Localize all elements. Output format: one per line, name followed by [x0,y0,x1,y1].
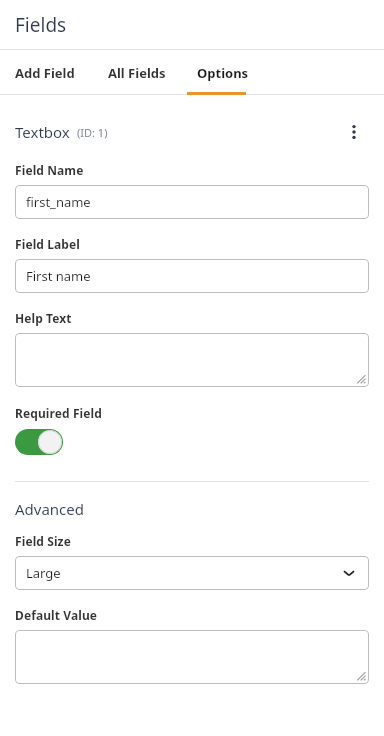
button[interactable]: Add Field [15,50,75,95]
staticText: Field Name [15,162,84,178]
button[interactable]: First name [15,259,369,293]
staticText: Options [197,64,249,82]
button[interactable]: Required Field toggle, on [15,429,63,455]
staticText: Fields [15,12,67,38]
staticText: Required Field [15,405,102,421]
staticText: First name [26,267,91,285]
button[interactable] [15,333,369,387]
button[interactable] [15,630,369,684]
staticText: Advanced [15,499,85,519]
staticText: All Fields [108,64,166,82]
staticText: Default Value [15,607,98,623]
button[interactable]: first_name [15,185,369,219]
staticText: Large [26,564,61,582]
staticText: Textbox [15,122,70,142]
staticText: (ID: 1) [77,125,108,140]
button[interactable]: More options [339,117,369,147]
staticText: first_name [26,193,91,211]
button[interactable]: All Fields [108,50,166,95]
staticText: Field Size [15,533,71,549]
staticText: Help Text [15,310,72,326]
staticText: Field Label [15,236,80,252]
button[interactable]: Options [197,50,249,95]
button[interactable]: Large [15,556,369,590]
staticText: Add Field [15,64,75,82]
